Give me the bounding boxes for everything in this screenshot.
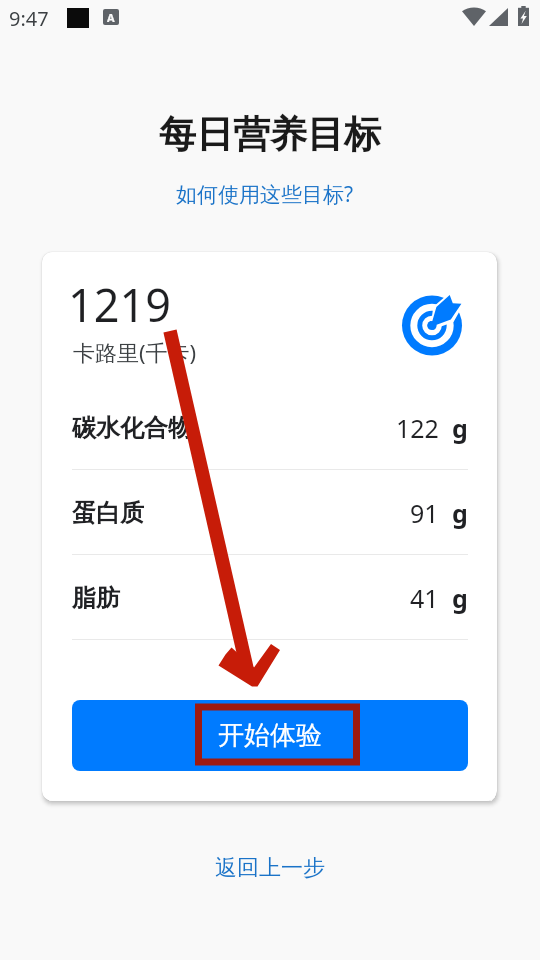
staticText: g [452, 581, 468, 615]
staticText: 每日营养目标 [159, 111, 381, 158]
other: Battery charging [518, 6, 529, 26]
button[interactable]: 如何使用这些目标? [166, 176, 364, 213]
staticText: 122 [396, 411, 439, 445]
staticText: 碳水化合物 [72, 413, 192, 443]
staticText: 如何使用这些目标? [176, 180, 354, 209]
button[interactable]: 开始体验 [72, 700, 468, 771]
other: Wi-Fi signal [462, 8, 486, 26]
staticText: g [452, 411, 468, 445]
staticText: 91 [410, 496, 439, 530]
other: Daily nutrition target [402, 294, 464, 356]
staticText: 卡路里(千卡) [73, 337, 197, 367]
staticText: 41 [410, 581, 439, 615]
other: Mobile signal [489, 8, 508, 26]
button[interactable]: 返回上一步 [203, 848, 337, 888]
staticText: 9:47 [9, 5, 49, 32]
staticText: 1219 [68, 274, 171, 335]
staticText: 返回上一步 [215, 854, 325, 882]
staticText: 蛋白质 [72, 498, 144, 528]
staticText: 脂肪 [72, 583, 120, 613]
staticText: g [452, 496, 468, 530]
staticText: 开始体验 [218, 719, 322, 752]
staticText: A [107, 10, 115, 25]
